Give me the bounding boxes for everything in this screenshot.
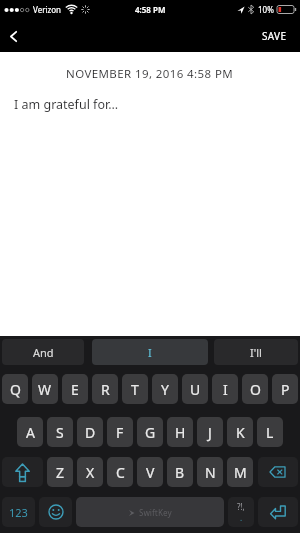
button[interactable]: I'll	[214, 339, 298, 365]
staticText: And	[33, 345, 54, 360]
button[interactable]: ?!,	[228, 497, 254, 527]
staticText: R	[101, 380, 110, 399]
staticText: C	[116, 463, 125, 482]
staticText: Y	[161, 380, 169, 399]
button[interactable]	[0, 21, 26, 51]
button[interactable]: M	[227, 457, 253, 487]
staticText: A	[26, 423, 35, 442]
staticText: SwiftKey	[139, 507, 172, 518]
staticText: K	[236, 423, 245, 442]
staticText: SAVE	[262, 29, 287, 43]
staticText: I'll	[250, 345, 262, 360]
staticText: NOVEMBER 19, 2016 4:58 PM	[66, 66, 234, 82]
button[interactable]: G	[137, 417, 163, 447]
button[interactable]: SAVE	[249, 22, 300, 50]
button[interactable]: E	[62, 374, 88, 404]
button[interactable]: D	[77, 417, 103, 447]
button[interactable]: S	[47, 417, 73, 447]
button[interactable]: K	[227, 417, 253, 447]
button[interactable]: And	[2, 339, 84, 365]
staticText: Z	[56, 463, 65, 482]
button[interactable]: SwiftKey	[76, 497, 224, 527]
button[interactable]: A	[17, 417, 43, 447]
staticText: .	[240, 512, 243, 523]
staticText: F	[116, 423, 124, 442]
staticText: I am grateful for...	[14, 96, 119, 113]
button[interactable]: Z	[47, 457, 73, 487]
button[interactable]: B	[167, 457, 193, 487]
button[interactable]	[258, 497, 298, 527]
staticText: X	[86, 463, 95, 482]
staticText: H	[175, 423, 186, 442]
button[interactable]: 123	[2, 497, 35, 527]
staticText: E	[71, 380, 79, 399]
button[interactable]: O	[242, 374, 268, 404]
button[interactable]: R	[92, 374, 118, 404]
staticText: O	[250, 380, 261, 399]
staticText: L	[266, 423, 274, 442]
button[interactable]: Y	[152, 374, 178, 404]
staticText: ?!,	[237, 501, 245, 512]
button[interactable]	[2, 457, 43, 487]
button[interactable]: H	[167, 417, 193, 447]
button[interactable]: W	[32, 374, 58, 404]
staticText: S	[56, 423, 64, 442]
button[interactable]: V	[137, 457, 163, 487]
staticText: Q	[10, 380, 21, 399]
button[interactable]	[258, 457, 298, 487]
staticText: 123	[9, 505, 28, 520]
button[interactable]: P	[272, 374, 298, 404]
button[interactable]: C	[107, 457, 133, 487]
staticText: M	[234, 463, 247, 482]
button[interactable]: U	[182, 374, 208, 404]
staticText: 4:58 PM	[135, 4, 166, 15]
button[interactable]: J	[197, 417, 223, 447]
button[interactable]: I	[212, 374, 238, 404]
button[interactable]: F	[107, 417, 133, 447]
staticText: T	[131, 380, 139, 399]
staticText: N	[205, 463, 216, 482]
button[interactable]: T	[122, 374, 148, 404]
staticText: 10%	[258, 4, 274, 15]
button[interactable]: L	[257, 417, 283, 447]
staticText: P	[281, 380, 290, 399]
staticText: W	[38, 380, 52, 399]
staticText: I	[223, 380, 228, 399]
button[interactable]: N	[197, 457, 223, 487]
button[interactable]	[39, 497, 72, 527]
staticText: V	[146, 463, 155, 482]
staticText: D	[85, 423, 96, 442]
staticText: J	[208, 423, 212, 442]
staticText: U	[190, 380, 201, 399]
staticText: Verizon	[33, 4, 62, 15]
button[interactable]: Q	[2, 374, 28, 404]
staticText: I	[148, 345, 152, 360]
staticText: G	[145, 423, 156, 442]
button[interactable]: X	[77, 457, 103, 487]
button[interactable]: I	[92, 339, 208, 365]
staticText: B	[175, 463, 185, 482]
